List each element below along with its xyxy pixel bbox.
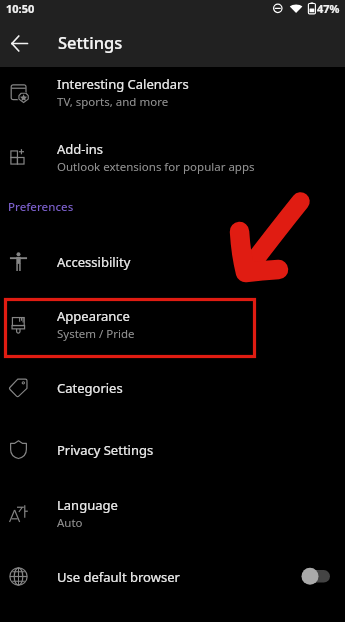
- staticText: Accessibility: [57, 253, 131, 271]
- button[interactable]: Back: [1, 25, 37, 61]
- staticText: Interesting Calendars: [57, 75, 189, 93]
- staticText: Settings: [58, 31, 123, 53]
- button[interactable]: Interesting Calendars: [0, 61, 345, 124]
- staticText: Appearance: [57, 307, 130, 325]
- staticText: 10:50: [6, 1, 35, 16]
- staticText: Auto: [57, 515, 83, 531]
- button[interactable]: Add-ins: [0, 126, 345, 189]
- staticText: System / Pride: [57, 326, 135, 342]
- staticText: Outlook extensions for popular apps: [57, 159, 255, 175]
- staticText: 47%: [317, 1, 340, 16]
- button[interactable]: Appearance: [0, 293, 345, 356]
- button[interactable]: Categories: [0, 356, 345, 419]
- staticText: Add-ins: [57, 140, 104, 158]
- button[interactable]: Privacy Settings: [0, 418, 345, 481]
- staticText: Preferences: [8, 199, 74, 215]
- staticText: TV, sports, and more: [57, 94, 169, 110]
- button[interactable]: Use default browser: [0, 545, 345, 608]
- button[interactable]: Use default browser: [294, 562, 340, 591]
- staticText: Privacy Settings: [57, 441, 154, 459]
- staticText: Use default browser: [57, 568, 180, 586]
- button[interactable]: Accessibility: [0, 230, 345, 293]
- staticText: Categories: [57, 379, 123, 397]
- button[interactable]: Language: [0, 482, 345, 545]
- staticText: Language: [57, 496, 118, 514]
